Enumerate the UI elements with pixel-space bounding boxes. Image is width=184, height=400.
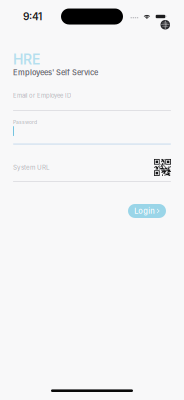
staticText: Email or Employee ID <box>13 92 71 99</box>
staticText: Login <box>134 206 154 215</box>
staticText: 9:41 <box>23 10 42 23</box>
button[interactable]: Scan QR code <box>154 159 171 176</box>
staticText: Employees' Self Service <box>13 68 98 77</box>
staticText: System URL <box>13 164 50 171</box>
button[interactable]: Login <box>128 204 166 218</box>
staticText: HRE <box>13 51 40 68</box>
button[interactable]: Change language <box>157 17 173 32</box>
staticText: Password <box>13 119 37 125</box>
